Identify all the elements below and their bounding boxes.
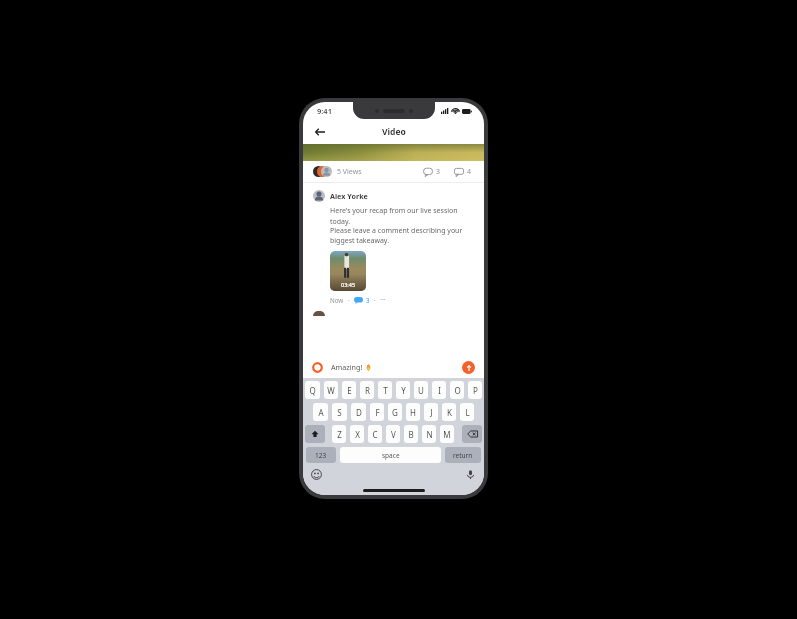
button[interactable]: C — [368, 425, 382, 443]
button[interactable]: J — [424, 403, 438, 421]
button[interactable]: 3 — [421, 167, 443, 177]
staticText: Please leave a comment describing your — [330, 226, 463, 236]
button[interactable]: Dictation — [465, 469, 476, 480]
button[interactable]: N — [422, 425, 436, 443]
staticText: H — [410, 407, 416, 418]
button[interactable] — [354, 297, 363, 304]
staticText: C — [372, 429, 378, 440]
staticText: 3 — [366, 296, 370, 304]
staticText: S — [337, 407, 342, 418]
button[interactable]: Back — [311, 123, 329, 141]
staticText: T — [383, 385, 388, 396]
button[interactable]: T — [378, 381, 392, 399]
staticText: A — [318, 407, 324, 418]
staticText: Y — [401, 385, 406, 396]
button[interactable]: 4 — [452, 167, 474, 177]
staticText: 5 Views — [337, 167, 362, 177]
button[interactable]: S — [332, 403, 347, 421]
button[interactable]: Send — [462, 361, 475, 374]
staticText: Amazing! — [331, 362, 365, 372]
button[interactable]: U — [414, 381, 428, 399]
button[interactable]: Q — [305, 381, 320, 399]
staticText: space — [382, 451, 400, 460]
staticText: ··· — [380, 295, 386, 305]
staticText: 3 — [436, 167, 441, 177]
button[interactable]: E — [342, 381, 356, 399]
staticText: Here's your recap from our live session … — [330, 206, 474, 226]
button[interactable]: Z — [332, 425, 346, 443]
staticText: L — [465, 407, 470, 418]
staticText: V — [391, 429, 396, 440]
button[interactable]: Key — [305, 425, 325, 443]
button[interactable]: Amazing! — [331, 362, 462, 372]
button[interactable]: K — [442, 403, 456, 421]
button[interactable]: space — [340, 447, 441, 463]
button[interactable]: D — [351, 403, 366, 421]
staticText: E — [347, 385, 352, 396]
staticText: R — [365, 385, 370, 396]
staticText: Alex Yorke — [330, 191, 368, 201]
staticText: · — [348, 296, 350, 304]
staticText: U — [418, 385, 424, 396]
button[interactable]: X — [350, 425, 364, 443]
staticText: 03:45 — [341, 281, 356, 288]
button[interactable]: A — [313, 403, 328, 421]
staticText: F — [375, 407, 380, 418]
button[interactable]: G — [388, 403, 402, 421]
staticText: J — [430, 407, 433, 418]
button[interactable]: L — [460, 403, 474, 421]
staticText: I — [438, 385, 441, 396]
staticText: P — [473, 385, 478, 396]
staticText: Now — [330, 296, 344, 304]
button[interactable]: P — [468, 381, 482, 399]
staticText: 123 — [315, 451, 327, 460]
staticText: 9:41 — [317, 106, 332, 116]
staticText: M — [443, 429, 451, 440]
staticText: X — [355, 429, 360, 440]
staticText: 4 — [467, 167, 472, 177]
button[interactable]: Emoji — [311, 469, 322, 480]
staticText: Video — [382, 126, 406, 138]
button[interactable]: F — [370, 403, 384, 421]
button[interactable]: W — [324, 381, 338, 399]
button[interactable]: M — [440, 425, 454, 443]
button[interactable]: return — [445, 447, 481, 463]
staticText: Q — [309, 385, 316, 396]
staticText: G — [392, 407, 398, 418]
button[interactable]: Play video — [330, 251, 366, 291]
staticText: W — [327, 385, 335, 396]
staticText: N — [426, 429, 433, 440]
button[interactable]: R — [360, 381, 374, 399]
staticText: B — [408, 429, 414, 440]
button[interactable]: O — [450, 381, 464, 399]
button[interactable]: 123 — [306, 447, 336, 463]
staticText: K — [447, 407, 452, 418]
button[interactable]: H — [406, 403, 420, 421]
button[interactable]: Key — [462, 425, 482, 443]
button[interactable]: More options — [380, 295, 386, 305]
staticText: O — [454, 385, 461, 396]
staticText: D — [356, 407, 362, 418]
button[interactable]: V — [386, 425, 400, 443]
button[interactable]: Y — [396, 381, 410, 399]
staticText: · — [374, 296, 376, 304]
staticText: biggest takeaway. — [330, 236, 390, 246]
staticText: Z — [337, 429, 342, 440]
button[interactable]: I — [432, 381, 446, 399]
button[interactable]: B — [404, 425, 418, 443]
staticText: return — [453, 451, 473, 460]
button[interactable]: Your profile — [312, 362, 323, 373]
